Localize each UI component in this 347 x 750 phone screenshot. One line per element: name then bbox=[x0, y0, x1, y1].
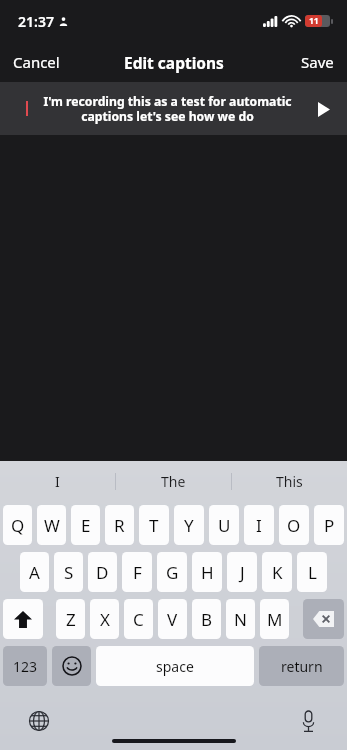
button[interactable]: Shift bbox=[3, 599, 43, 639]
button[interactable]: G bbox=[157, 552, 187, 592]
staticText: S bbox=[64, 561, 74, 584]
button[interactable]: Emoji bbox=[52, 646, 91, 686]
button[interactable]: V bbox=[158, 599, 187, 639]
button[interactable]: J bbox=[227, 552, 257, 592]
button[interactable]: Switch keyboard bbox=[24, 706, 54, 736]
button[interactable]: Y bbox=[174, 505, 204, 545]
staticText: Z bbox=[66, 608, 76, 631]
staticText: K bbox=[272, 561, 283, 584]
staticText: I bbox=[55, 472, 60, 491]
button[interactable]: O bbox=[279, 505, 309, 545]
staticText: I bbox=[256, 514, 262, 537]
button[interactable]: T bbox=[139, 505, 169, 545]
staticText: return bbox=[281, 657, 323, 676]
staticText: I'm recording this as a test for automat… bbox=[28, 93, 307, 124]
staticText: W bbox=[44, 514, 60, 537]
staticText: This bbox=[276, 472, 303, 491]
staticText: Y bbox=[184, 514, 194, 537]
staticText: N bbox=[234, 608, 247, 631]
button[interactable]: B bbox=[192, 599, 221, 639]
button[interactable]: L bbox=[297, 552, 327, 592]
staticText: 11 bbox=[309, 15, 319, 27]
staticText: H bbox=[201, 561, 214, 584]
staticText: L bbox=[308, 561, 317, 584]
button[interactable]: A bbox=[20, 552, 49, 592]
staticText: space bbox=[156, 657, 194, 676]
button[interactable]: 123 bbox=[3, 646, 47, 686]
staticText: P bbox=[324, 514, 335, 537]
button[interactable]: S bbox=[54, 552, 83, 592]
staticText: F bbox=[133, 561, 142, 584]
staticText: The bbox=[161, 472, 186, 491]
staticText: Save bbox=[301, 52, 334, 72]
staticText: A bbox=[29, 561, 40, 584]
staticText: Q bbox=[11, 514, 25, 537]
button[interactable]: Delete bbox=[303, 599, 344, 639]
button[interactable]: K bbox=[262, 552, 292, 592]
staticText: T bbox=[149, 514, 159, 537]
button[interactable]: R bbox=[105, 505, 134, 545]
button[interactable]: space bbox=[96, 646, 254, 686]
button[interactable]: Q bbox=[3, 505, 32, 545]
button[interactable]: H bbox=[192, 552, 222, 592]
staticText: J bbox=[240, 561, 245, 584]
staticText: X bbox=[100, 608, 110, 631]
button[interactable]: Cancel bbox=[0, 46, 73, 78]
button[interactable]: return bbox=[259, 646, 344, 686]
staticText: D bbox=[96, 561, 109, 584]
button[interactable]: U bbox=[209, 505, 239, 545]
staticText: C bbox=[133, 608, 144, 631]
staticText: E bbox=[81, 514, 91, 537]
staticText: O bbox=[287, 514, 301, 537]
button[interactable]: M bbox=[260, 599, 289, 639]
button[interactable]: Z bbox=[56, 599, 85, 639]
button[interactable]: Dictate bbox=[293, 706, 323, 736]
button[interactable]: I bbox=[0, 461, 115, 501]
staticText: B bbox=[201, 608, 213, 631]
staticText: Edit captions bbox=[124, 52, 224, 73]
button[interactable]: C bbox=[124, 599, 153, 639]
button[interactable]: W bbox=[37, 505, 66, 545]
staticText: 21:37 bbox=[18, 12, 54, 31]
staticText: V bbox=[167, 608, 178, 631]
staticText: 123 bbox=[13, 657, 38, 676]
button[interactable]: This bbox=[232, 461, 347, 501]
button[interactable]: F bbox=[122, 552, 152, 592]
staticText: G bbox=[166, 561, 179, 584]
button[interactable]: N bbox=[226, 599, 255, 639]
staticText: U bbox=[218, 514, 231, 537]
staticText: R bbox=[114, 514, 125, 537]
staticText: Cancel bbox=[13, 52, 60, 72]
button[interactable]: E bbox=[71, 505, 100, 545]
staticText: M bbox=[267, 608, 283, 631]
button[interactable]: I bbox=[244, 505, 274, 545]
button[interactable]: P bbox=[314, 505, 344, 545]
button[interactable]: X bbox=[90, 599, 119, 639]
button[interactable]: D bbox=[88, 552, 117, 592]
button[interactable]: The bbox=[116, 461, 231, 501]
button[interactable]: Save bbox=[288, 46, 347, 78]
button[interactable]: Play bbox=[307, 92, 341, 126]
